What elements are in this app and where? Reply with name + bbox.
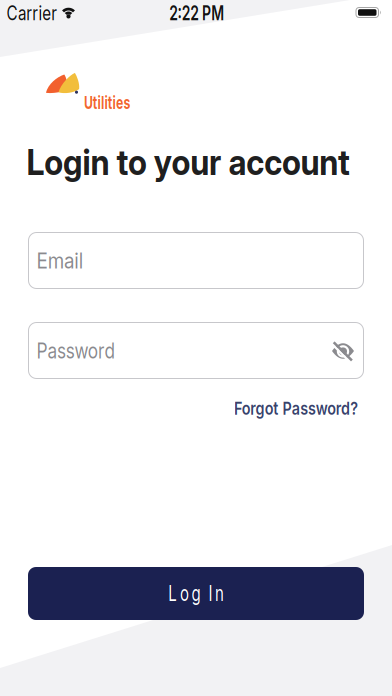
staticText: Email xyxy=(36,247,90,274)
button[interactable]: Email xyxy=(28,232,364,289)
staticText: Login to your account xyxy=(26,140,389,184)
staticText: Forgot Password? xyxy=(197,397,358,419)
button[interactable]: Forgot Password? xyxy=(197,397,358,419)
staticText: L o g I n xyxy=(158,581,234,606)
button[interactable]: Log In xyxy=(28,567,364,620)
staticText: Carrier xyxy=(6,1,72,25)
button[interactable]: Show password xyxy=(331,340,355,363)
staticText: 2:22 PM xyxy=(157,1,235,25)
staticText: Utilities xyxy=(84,92,152,113)
button[interactable]: Password xyxy=(28,322,364,379)
staticText: Password xyxy=(36,337,135,364)
